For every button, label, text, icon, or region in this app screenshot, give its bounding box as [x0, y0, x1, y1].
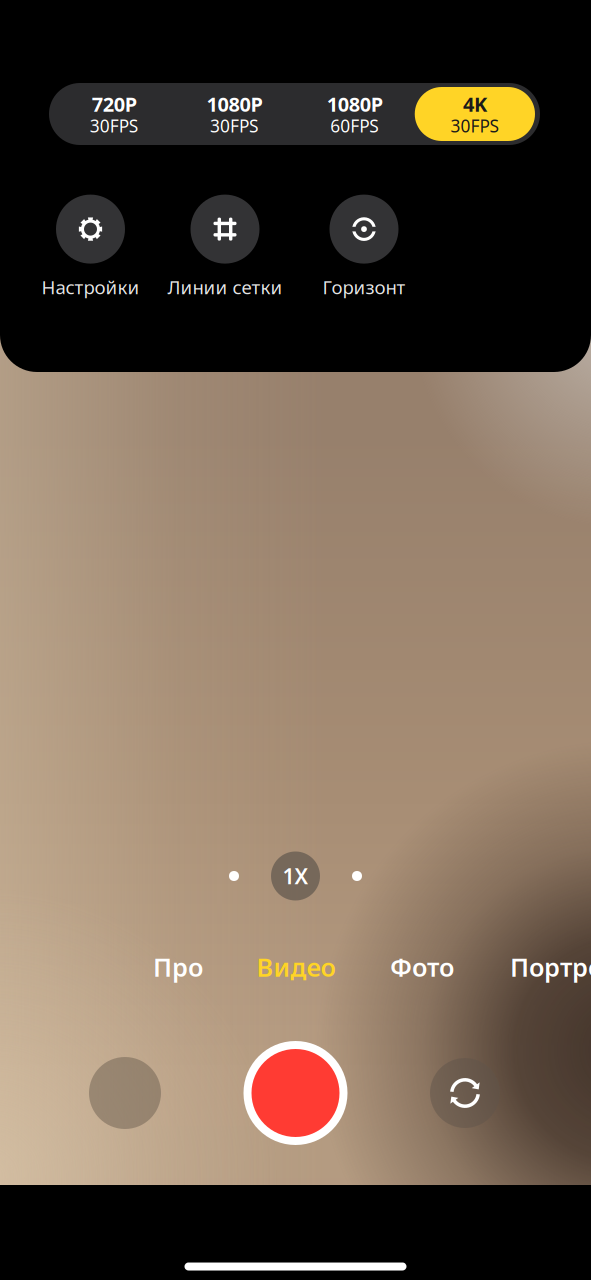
staticText: 30FPS	[90, 114, 139, 137]
button[interactable]: Record	[243, 1041, 347, 1145]
button[interactable]: Про	[153, 950, 203, 984]
staticText: 60FPS	[330, 114, 379, 137]
staticText: 720P	[92, 91, 137, 117]
staticText: 1X	[282, 862, 308, 890]
staticText: 4K	[463, 91, 487, 117]
staticText: 1080P	[206, 91, 262, 117]
staticText: Линии сетки	[167, 275, 282, 299]
staticText: Горизонт	[322, 275, 405, 299]
button[interactable]: Switch camera	[430, 1058, 500, 1128]
button[interactable]: Портрет	[510, 950, 591, 984]
staticText: 30FPS	[210, 114, 259, 137]
button[interactable]: Горизонт	[322, 195, 405, 299]
button[interactable]: Видео	[256, 950, 335, 984]
staticText: Про	[153, 950, 203, 984]
button[interactable]: Линии сетки	[167, 195, 282, 299]
staticText: Настройки	[41, 275, 139, 299]
staticText: Фото	[390, 950, 454, 984]
button[interactable]: 1080P	[174, 87, 294, 141]
button[interactable]: Фото	[390, 950, 454, 984]
staticText: Видео	[256, 950, 335, 984]
button[interactable]: 4K	[415, 87, 535, 141]
button[interactable]: 720P	[54, 87, 174, 141]
staticText: 30FPS	[450, 114, 499, 137]
button[interactable]: 1X	[271, 851, 320, 900]
staticText: Портрет	[510, 950, 591, 984]
button[interactable]: Gallery	[89, 1057, 161, 1129]
button[interactable]: Настройки	[41, 195, 139, 299]
button[interactable]: 1080P	[294, 87, 415, 141]
staticText: 1080P	[327, 91, 383, 117]
